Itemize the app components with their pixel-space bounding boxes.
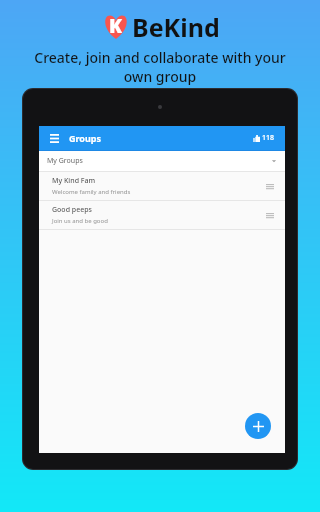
staticText: BeKind bbox=[132, 10, 220, 44]
button[interactable]: Create new group bbox=[245, 413, 271, 439]
staticText: K bbox=[109, 13, 123, 39]
staticText: Welcome family and friends bbox=[52, 188, 131, 196]
staticText: Groups bbox=[69, 132, 102, 144]
button[interactable]: Good peeps bbox=[39, 201, 285, 229]
staticText: My Kind Fam bbox=[52, 176, 96, 186]
button[interactable]: Open navigation menu bbox=[47, 131, 61, 145]
button[interactable]: Reorder Good peeps bbox=[264, 209, 276, 221]
button[interactable]: Kindness points: 118 bbox=[251, 131, 277, 145]
staticText: My Groups bbox=[47, 156, 83, 166]
button[interactable]: My Groups bbox=[39, 151, 285, 171]
button[interactable]: My Kind Fam bbox=[39, 172, 285, 200]
staticText: 118 bbox=[262, 133, 275, 143]
staticText: Good peeps bbox=[52, 205, 92, 215]
button[interactable]: Reorder My Kind Fam bbox=[264, 180, 276, 192]
staticText: Join us and be good bbox=[52, 217, 108, 225]
staticText: Create, join and collaborate with your o… bbox=[14, 48, 306, 86]
